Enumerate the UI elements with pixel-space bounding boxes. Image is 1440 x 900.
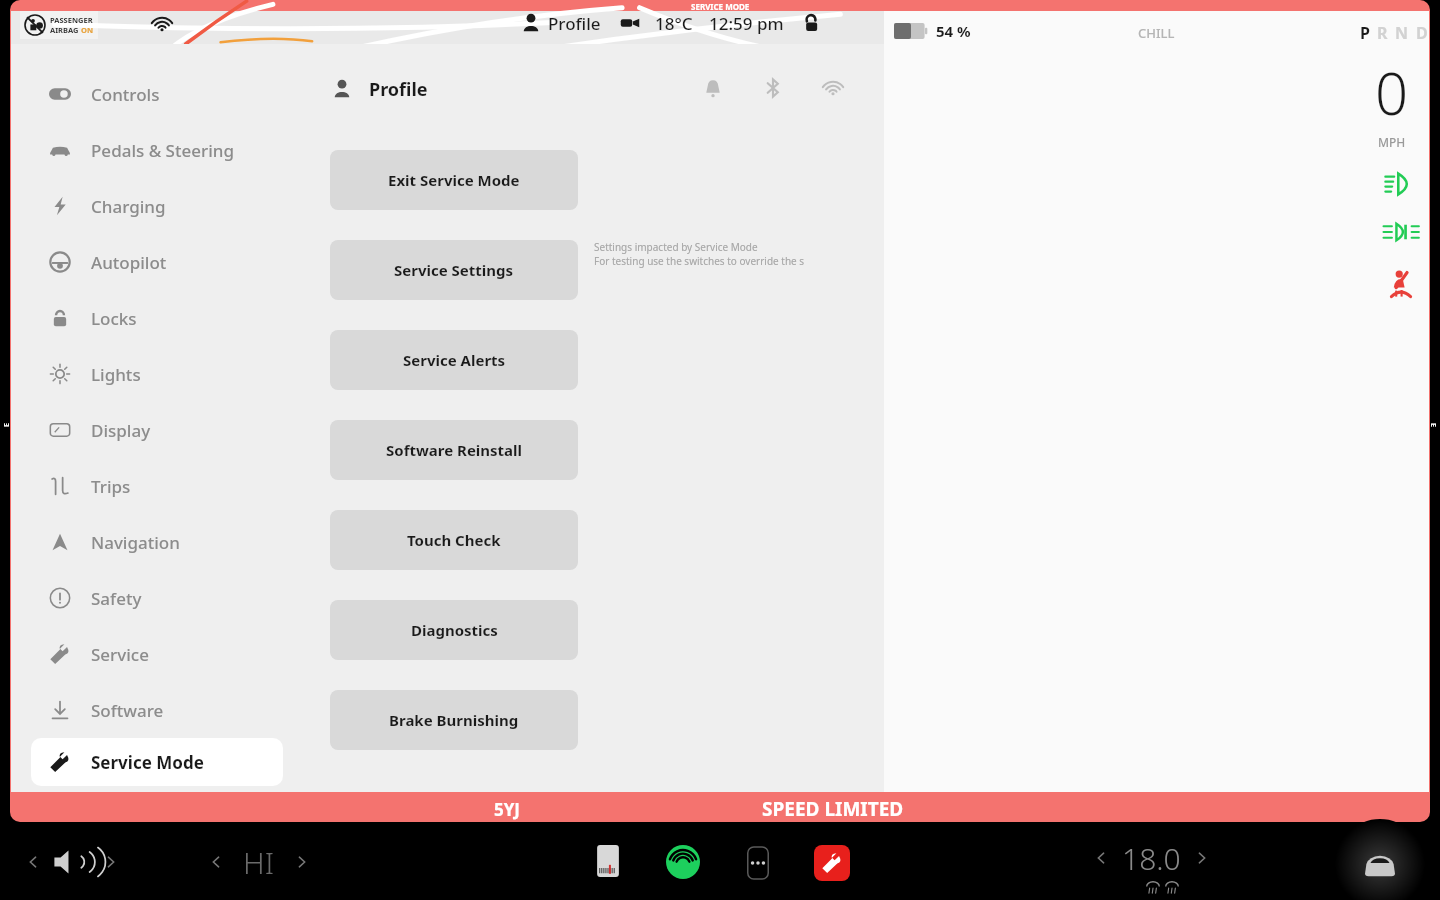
staticText: Service Settings (394, 260, 514, 280)
button[interactable]: Brake Burnishing (330, 690, 578, 750)
staticText: D (1416, 22, 1428, 44)
staticText: P (1360, 22, 1370, 44)
staticText: SPEED LIMITED (762, 796, 904, 822)
staticText: CHILL (1138, 24, 1175, 42)
button[interactable]: Charging (31, 178, 311, 234)
staticText: 18.0 (1122, 838, 1181, 878)
button[interactable]: Lights (31, 346, 311, 402)
staticText: 54 % (936, 21, 971, 41)
staticText: Profile (369, 77, 428, 102)
staticText: SERVICE MODE (691, 1, 750, 12)
staticText: Trips (91, 475, 131, 498)
staticText: 5YJ (494, 798, 520, 821)
staticText: Controls (91, 83, 160, 106)
button[interactable]: Navigation (31, 514, 311, 570)
button[interactable]: Service Mode (31, 738, 283, 786)
button[interactable]: Autopilot (31, 234, 311, 290)
button[interactable]: Service Settings (330, 240, 578, 300)
staticText: N (1395, 22, 1409, 44)
button[interactable]: Display (31, 402, 311, 458)
button[interactable]: Locks (31, 290, 311, 346)
staticText: Settings impacted by Service Mode (594, 240, 758, 254)
staticText: 0 (1375, 53, 1409, 132)
button[interactable]: Bluetooth (761, 76, 785, 100)
staticText: Pedals & Steering (91, 139, 234, 162)
staticText: HI (243, 842, 275, 883)
staticText: ON (81, 25, 94, 35)
staticText: Service Alerts (403, 350, 506, 370)
staticText: Software Reinstall (386, 440, 523, 460)
staticText: Autopilot (91, 251, 167, 274)
staticText: Touch Check (407, 530, 501, 550)
staticText: Exit Service Mode (388, 170, 520, 190)
staticText: Safety (91, 587, 142, 610)
button[interactable]: Next track (291, 851, 313, 873)
button[interactable]: Diagnostics (330, 600, 578, 660)
button[interactable]: Camera (619, 12, 641, 34)
button[interactable]: Previous track (205, 851, 227, 873)
staticText: Diagnostics (411, 620, 498, 640)
button[interactable]: Temperature down (1090, 847, 1112, 869)
staticText: MPH (1378, 134, 1406, 150)
button[interactable]: Volume up (100, 851, 122, 873)
button[interactable]: Lock (800, 12, 822, 34)
staticText: 18°C (655, 12, 693, 35)
button[interactable]: Service Alerts (330, 330, 578, 390)
staticText: Service Mode (91, 751, 204, 774)
staticText: Navigation (91, 531, 180, 554)
button[interactable]: Car controls (1330, 834, 1430, 894)
staticText: R (1377, 22, 1388, 44)
staticText: SERVICE MODE (0, 418, 32, 432)
staticText: For testing use the switches to override… (594, 254, 805, 268)
button[interactable]: Wi-Fi settings (821, 76, 845, 100)
staticText: Brake Burnishing (389, 710, 519, 730)
staticText: Service (91, 643, 149, 666)
other: Wi-Fi (150, 12, 174, 36)
staticText: AIRBAG (50, 25, 81, 35)
button[interactable]: Service (814, 845, 850, 881)
button[interactable]: Safety (31, 570, 311, 626)
button[interactable]: Profile (520, 12, 542, 34)
button[interactable]: Volume (50, 840, 94, 884)
button[interactable]: Trips (31, 458, 311, 514)
button[interactable]: Notifications (701, 76, 725, 100)
staticText: Display (91, 419, 151, 442)
staticText: Software (91, 699, 164, 722)
button[interactable]: Exit Service Mode (330, 150, 578, 210)
staticText: SERVICE MODE (1408, 418, 1440, 432)
button[interactable]: Touch Check (330, 510, 578, 570)
button[interactable]: Controls (31, 66, 311, 122)
button[interactable]: Software Reinstall (330, 420, 578, 480)
staticText: Locks (91, 307, 137, 330)
button[interactable]: Temperature up (1191, 847, 1213, 869)
button[interactable]: Spotify (666, 845, 700, 879)
button[interactable]: Volume down (22, 851, 44, 873)
button[interactable]: FM Radio (592, 845, 624, 877)
staticText: Profile (548, 12, 601, 35)
button[interactable]: More apps (742, 847, 774, 879)
staticText: Charging (91, 195, 166, 218)
staticText: PASSENGER (50, 15, 93, 25)
button[interactable]: Service (31, 626, 311, 682)
staticText: 12:59 pm (709, 12, 784, 35)
button[interactable]: Software (31, 682, 311, 738)
staticText: Lights (91, 363, 141, 386)
button[interactable]: Pedals & Steering (31, 122, 311, 178)
